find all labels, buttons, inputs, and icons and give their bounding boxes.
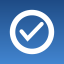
button[interactable]: Completed	[0, 0, 64, 64]
